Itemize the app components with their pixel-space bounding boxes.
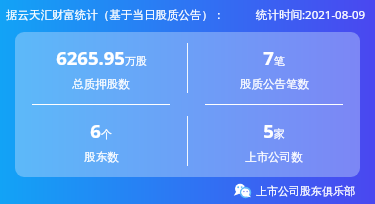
staticText: 总质押股数	[72, 77, 130, 91]
other: WeChat 微信	[234, 182, 251, 199]
button[interactable]: WeChat 微信	[232, 180, 357, 201]
staticText: 上市公司数	[245, 150, 303, 164]
staticText: 5	[263, 118, 274, 143]
button[interactable]: 6265.95	[15, 32, 187, 104]
staticText: 上市公司股东俱乐部	[256, 184, 355, 198]
staticText: 据云天汇财富统计（基于当日股质公告）：	[6, 8, 225, 22]
staticText: 6	[90, 118, 101, 143]
staticText: 6265.95	[56, 45, 125, 70]
staticText: 家	[274, 127, 285, 141]
staticText: 万股	[125, 54, 147, 68]
staticText: 统计时间:2021-08-09	[256, 7, 366, 23]
staticText: 7	[263, 45, 274, 70]
staticText: 股质公告笔数	[240, 77, 309, 91]
button[interactable]: 5	[188, 105, 360, 177]
button[interactable]: 6	[15, 105, 187, 177]
staticText: 个	[101, 127, 112, 141]
staticText: 笔	[274, 54, 285, 68]
staticText: 股东数	[84, 150, 119, 164]
button[interactable]: 7	[188, 32, 360, 104]
